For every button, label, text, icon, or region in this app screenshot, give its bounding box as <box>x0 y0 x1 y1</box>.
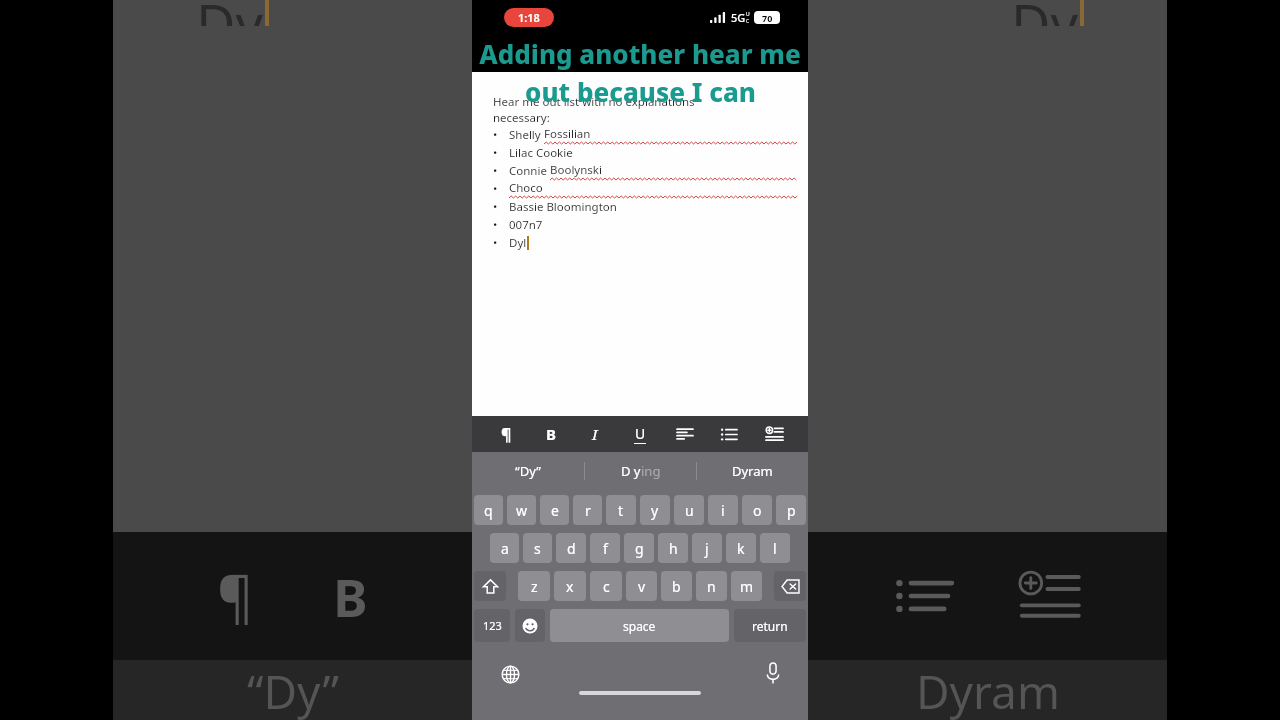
button[interactable]: f <box>590 533 620 563</box>
staticText: ing <box>641 462 661 480</box>
staticText: 1:18 <box>518 10 540 25</box>
staticText: Choco <box>509 180 543 196</box>
button[interactable]: Emoji <box>515 609 545 642</box>
staticText: 123 <box>483 618 502 633</box>
button[interactable]: Insert list item <box>758 416 790 452</box>
button[interactable]: p <box>776 495 806 525</box>
staticText: Adding another hear me <box>479 36 801 71</box>
button[interactable]: g <box>624 533 654 563</box>
button[interactable]: 123 <box>474 609 510 642</box>
button[interactable]: c <box>590 571 622 601</box>
staticText: x <box>566 577 574 596</box>
staticText: i <box>721 501 725 520</box>
button[interactable]: k <box>726 533 756 563</box>
button[interactable]: v <box>626 571 657 601</box>
staticText: q <box>484 501 493 520</box>
staticText: b <box>672 577 681 596</box>
button[interactable]: x <box>554 571 586 601</box>
staticText: Dyram <box>732 462 773 480</box>
button[interactable]: Italic <box>579 416 611 452</box>
button[interactable]: l <box>760 533 790 563</box>
button[interactable]: o <box>742 495 772 525</box>
staticText: out because I can <box>525 74 756 109</box>
button[interactable]: u <box>674 495 704 525</box>
staticText: f <box>603 539 608 558</box>
staticText: C <box>746 18 750 25</box>
button[interactable]: return <box>734 609 806 642</box>
button[interactable]: d <box>556 533 586 563</box>
button[interactable]: n <box>696 571 727 601</box>
staticText: r <box>585 501 591 520</box>
button[interactable]: a <box>490 533 519 563</box>
staticText: Hear me out list with no explanations <box>493 94 695 110</box>
staticText: 70 <box>762 12 773 24</box>
staticText: • <box>493 235 498 251</box>
button[interactable]: h <box>658 533 688 563</box>
staticText: m <box>740 577 754 596</box>
button[interactable]: z <box>518 571 550 601</box>
button[interactable]: Underline <box>624 416 656 452</box>
staticText: o <box>753 501 762 520</box>
staticText: Connie <box>509 163 550 179</box>
staticText: Dyl <box>509 235 527 251</box>
button[interactable]: D y <box>585 452 696 489</box>
staticText: v <box>638 577 646 596</box>
button[interactable]: Paragraph style <box>490 416 522 452</box>
staticText: s <box>534 539 541 558</box>
staticText: necessary: <box>493 110 550 126</box>
button[interactable]: e <box>540 495 569 525</box>
staticText: ¶ <box>501 423 512 445</box>
staticText: Dy <box>196 0 263 26</box>
button[interactable]: Shift <box>474 571 506 601</box>
button[interactable]: “Dy” <box>472 452 584 489</box>
staticText: u <box>685 501 694 520</box>
button[interactable]: space <box>550 609 729 642</box>
staticText: ¶ <box>217 558 254 634</box>
staticText: Dyram <box>916 660 1060 720</box>
staticText: w <box>516 501 528 520</box>
button[interactable]: Change keyboard language <box>498 662 522 686</box>
staticText: • <box>493 145 498 161</box>
button[interactable]: r <box>573 495 602 525</box>
staticText: U <box>635 424 646 443</box>
staticText: I <box>592 424 598 444</box>
staticText: k <box>737 539 745 558</box>
button[interactable]: j <box>692 533 722 563</box>
staticText: c <box>603 577 610 596</box>
staticText: Dy <box>1011 0 1078 26</box>
staticText: a <box>501 539 509 558</box>
button[interactable]: q <box>474 495 503 525</box>
staticText: B <box>546 424 556 444</box>
button[interactable]: Text alignment <box>669 416 701 452</box>
staticText: return <box>752 618 788 634</box>
staticText: • <box>493 199 498 215</box>
button[interactable]: t <box>606 495 636 525</box>
button[interactable]: m <box>731 571 762 601</box>
staticText: Fossilian <box>544 126 591 142</box>
staticText: B <box>333 561 368 632</box>
button[interactable]: i <box>708 495 738 525</box>
button[interactable]: b <box>661 571 692 601</box>
button[interactable]: Delete <box>774 571 806 601</box>
staticText: l <box>773 539 777 558</box>
staticText: d <box>567 539 576 558</box>
button[interactable]: s <box>523 533 552 563</box>
button[interactable]: Bulleted list <box>713 416 745 452</box>
staticText: t <box>618 501 624 520</box>
staticText: U <box>746 11 750 18</box>
staticText: “Dy” <box>247 660 339 720</box>
button[interactable]: Bold <box>535 416 567 452</box>
staticText: Boolynski <box>550 162 602 178</box>
button[interactable]: Dictation <box>760 660 786 686</box>
staticText: n <box>707 577 716 596</box>
staticText: e <box>551 501 559 520</box>
staticText: Lilac Cookie <box>509 145 573 161</box>
staticText: j <box>705 539 709 558</box>
button[interactable]: w <box>507 495 536 525</box>
button[interactable]: Dyram <box>697 452 808 489</box>
staticText: p <box>787 501 796 520</box>
staticText: Shelly <box>509 127 544 143</box>
button[interactable]: y <box>640 495 670 525</box>
staticText: • <box>493 217 498 233</box>
staticText: z <box>531 577 538 596</box>
